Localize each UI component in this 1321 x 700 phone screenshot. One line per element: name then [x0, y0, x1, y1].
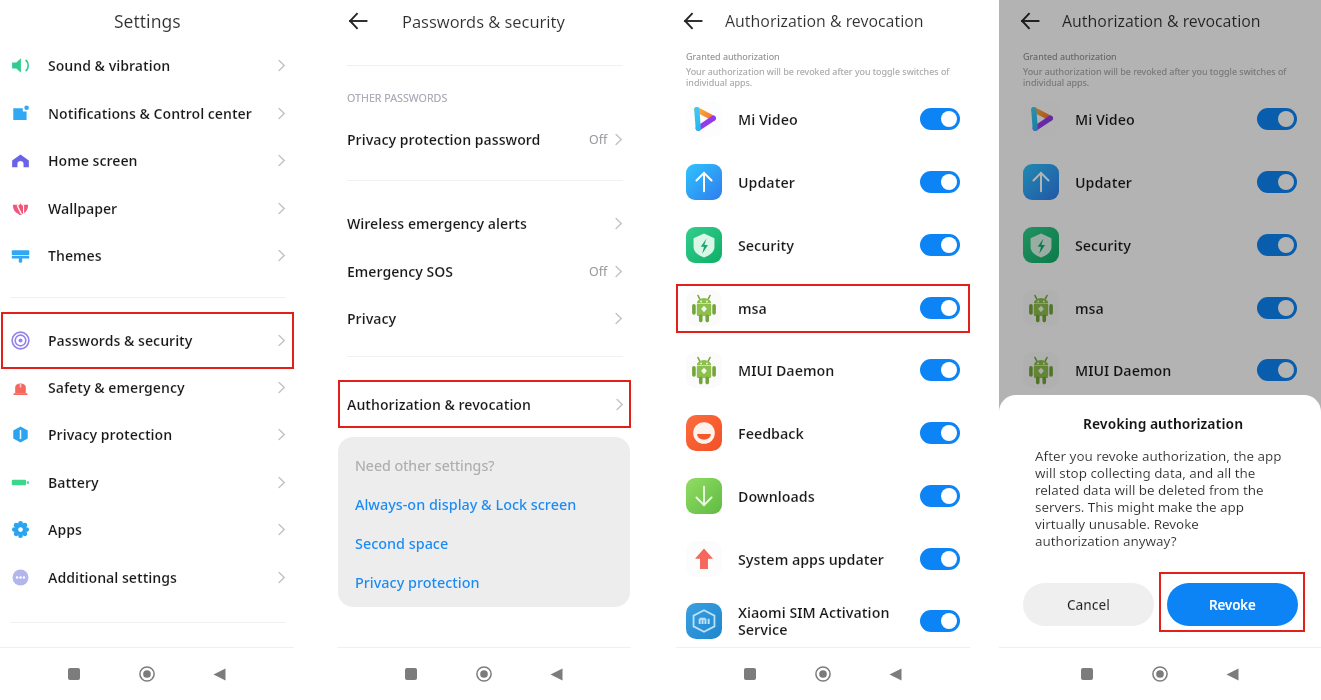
button[interactable]: Home [447, 656, 520, 692]
button[interactable]: Privacy [337, 304, 631, 332]
staticText: Authorization & revocation [1062, 10, 1261, 32]
staticText: Off [589, 263, 608, 280]
staticText: Security [738, 236, 920, 255]
staticText: Off [589, 131, 608, 148]
button[interactable]: Toggle authorization [920, 171, 960, 193]
staticText: MIUI Daemon [738, 361, 920, 380]
button[interactable]: Battery [0, 459, 294, 505]
button[interactable]: Mi Video [676, 93, 970, 145]
button[interactable]: MIUI Daemon [1013, 344, 1307, 396]
button[interactable]: Toggle authorization [1257, 108, 1297, 130]
staticText: Themes [48, 246, 274, 265]
staticText: Apps [48, 520, 274, 539]
staticText: Passwords & security [402, 10, 565, 32]
button[interactable]: Back [678, 6, 708, 36]
button[interactable]: Back [343, 6, 373, 36]
button[interactable]: Back [183, 656, 256, 692]
button[interactable]: Wireless emergency alerts [337, 209, 631, 237]
staticText: msa [1075, 299, 1257, 318]
button[interactable]: Toggle authorization [1257, 171, 1297, 193]
button[interactable]: Privacy protection [0, 411, 294, 457]
button[interactable]: Toggle authorization [1257, 234, 1297, 256]
staticText: Wallpaper [48, 199, 274, 218]
staticText: Passwords & security [48, 331, 274, 350]
button[interactable]: Toggle authorization [920, 610, 960, 632]
button[interactable]: Revoke [1167, 583, 1298, 626]
staticText: Safety & emergency [48, 378, 274, 397]
button[interactable]: MIUI Daemon [676, 344, 970, 396]
staticText: Need other settings? [355, 456, 495, 475]
button[interactable]: Home [110, 656, 183, 692]
button[interactable]: Updater [676, 156, 970, 208]
staticText: Second space [355, 534, 449, 554]
button[interactable]: Authorization & revocation [338, 380, 631, 428]
button[interactable]: Updater [1013, 156, 1307, 208]
button[interactable]: Home [786, 656, 859, 692]
button[interactable]: Feedback [676, 407, 970, 459]
button[interactable]: Toggle authorization [1257, 359, 1297, 381]
staticText: Your authorization will be revoked after… [1023, 65, 1287, 88]
button[interactable]: Passwords & security [0, 317, 294, 363]
button[interactable]: System apps updater [676, 533, 970, 585]
staticText: Additional settings [48, 568, 274, 587]
button[interactable]: Recents [374, 656, 447, 692]
staticText: Granted authorization [1023, 50, 1117, 62]
button[interactable]: Toggle authorization [920, 359, 960, 381]
button[interactable]: Toggle authorization [920, 422, 960, 444]
staticText: Mi Video [738, 110, 920, 129]
button[interactable]: Apps [0, 506, 294, 552]
staticText: msa [738, 299, 920, 318]
staticText: Authorization & revocation [347, 395, 612, 414]
button[interactable]: Notifications & Control center [0, 90, 294, 136]
staticText: Wireless emergency alerts [347, 214, 611, 233]
button[interactable]: Home screen [0, 137, 294, 183]
staticText: Sound & vibration [48, 56, 274, 75]
staticText: Feedback [738, 424, 920, 443]
staticText: OTHER PASSWORDS [347, 91, 448, 106]
staticText: Xiaomi SIM Activation Service [738, 603, 920, 640]
button[interactable]: Additional settings [0, 554, 294, 600]
button[interactable]: Recents [1050, 656, 1123, 692]
staticText: Revoke [1209, 596, 1256, 614]
staticText: Updater [738, 173, 920, 192]
staticText: Home screen [48, 151, 274, 170]
button[interactable]: Downloads [676, 470, 970, 522]
staticText: Granted authorization [686, 50, 780, 62]
button[interactable]: Toggle authorization [920, 548, 960, 570]
button[interactable]: Toggle authorization [920, 234, 960, 256]
button[interactable]: msa [676, 282, 970, 334]
staticText: Privacy protection password [347, 130, 589, 149]
button[interactable]: Back [1015, 6, 1045, 36]
button[interactable]: Back [520, 656, 593, 692]
button[interactable]: Toggle authorization [920, 108, 960, 130]
button[interactable]: Recents [713, 656, 786, 692]
staticText: Mi Video [1075, 110, 1257, 129]
staticText: Your authorization will be revoked after… [686, 65, 950, 88]
staticText: Notifications & Control center [48, 104, 274, 123]
button[interactable]: Toggle authorization [920, 297, 960, 319]
button[interactable]: Back [859, 656, 932, 692]
button[interactable]: Security [1013, 219, 1307, 271]
button[interactable]: Safety & emergency [0, 364, 294, 410]
staticText: Privacy [347, 309, 611, 328]
button[interactable]: Themes [0, 232, 294, 278]
button[interactable]: Security [676, 219, 970, 271]
button[interactable]: Wallpaper [0, 185, 294, 231]
button[interactable]: Xiaomi SIM Activation Service [676, 595, 970, 647]
button[interactable]: Toggle authorization [1257, 297, 1297, 319]
button[interactable]: Back [1196, 656, 1269, 692]
button[interactable]: Toggle authorization [920, 485, 960, 507]
staticText: Security [1075, 236, 1257, 255]
button[interactable]: Recents [37, 656, 110, 692]
button[interactable]: Emergency SOS [337, 257, 631, 285]
staticText: Cancel [1067, 596, 1110, 614]
staticText: Settings [114, 9, 181, 33]
button[interactable]: Cancel [1023, 583, 1154, 626]
button[interactable]: msa [1013, 282, 1307, 334]
staticText: After you revoke authorization, the app … [1035, 447, 1282, 550]
staticText: Always-on display & Lock screen [355, 495, 577, 515]
button[interactable]: Sound & vibration [0, 42, 294, 88]
button[interactable]: Mi Video [1013, 93, 1307, 145]
button[interactable]: Privacy protection password [337, 125, 631, 153]
button[interactable]: Home [1123, 656, 1196, 692]
